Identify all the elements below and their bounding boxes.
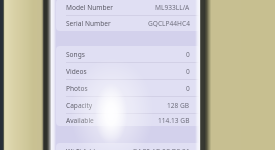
staticText: 114.13 GB — [158, 116, 190, 125]
staticText: 0 — [186, 84, 190, 93]
staticText: 128 GB — [167, 101, 190, 110]
staticText: 0 — [186, 50, 190, 59]
button[interactable]: Photos — [56, 80, 200, 96]
staticText: Serial Number — [66, 19, 111, 28]
staticText: Available — [66, 116, 94, 125]
staticText: Videos — [66, 67, 87, 76]
button[interactable]: Model Number — [56, 0, 200, 15]
staticText: Photos — [66, 84, 88, 93]
staticText: 0 — [186, 67, 190, 76]
staticText: Wi-Fi Address — [66, 147, 108, 150]
staticText: Capacity — [66, 101, 93, 110]
staticText: GQCLP44HC4 — [148, 19, 190, 28]
staticText: Model Number — [66, 3, 113, 12]
button[interactable]: Wi-Fi Address — [56, 143, 200, 150]
staticText: B4:F0:AB:0C:D8:21 — [133, 147, 190, 150]
button[interactable]: Songs — [56, 46, 200, 62]
button[interactable]: Serial Number — [56, 16, 200, 31]
button[interactable]: Videos — [56, 63, 200, 79]
button[interactable]: Available — [56, 114, 200, 126]
staticText: Songs — [66, 50, 85, 59]
button[interactable]: Capacity — [56, 97, 200, 113]
staticText: ML933LL/A — [155, 3, 190, 12]
